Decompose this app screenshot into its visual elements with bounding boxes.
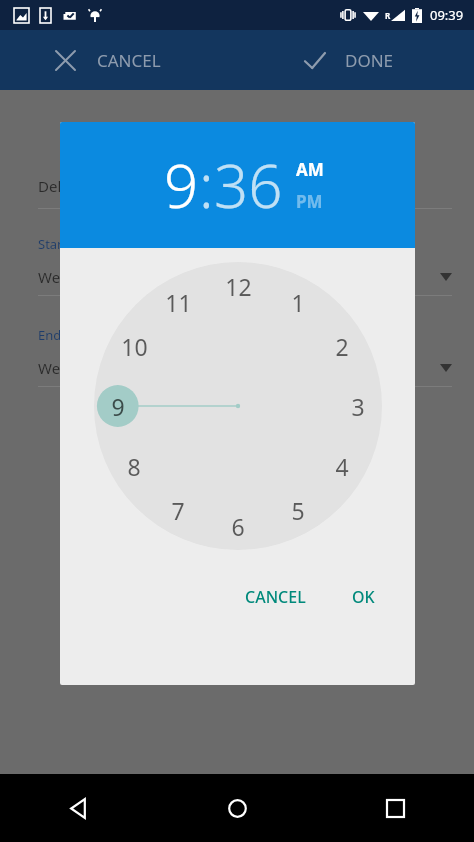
button[interactable]: AM	[296, 158, 324, 181]
button[interactable]: Back	[0, 774, 158, 842]
staticText: 6	[231, 511, 245, 542]
staticText: 09:39	[430, 6, 464, 24]
staticText: 4	[335, 451, 349, 482]
staticText: OK	[352, 586, 375, 608]
staticText: CANCEL	[97, 49, 161, 72]
staticText: DONE	[345, 49, 394, 72]
button[interactable]: PM	[296, 190, 323, 213]
button[interactable]: 36	[214, 144, 283, 226]
staticText: 11	[165, 287, 192, 318]
staticText: Wed, Jan 24, 2018	[38, 358, 163, 378]
button[interactable]: CANCEL	[56, 49, 161, 72]
button[interactable]: Recent apps	[316, 774, 474, 842]
staticText: :	[199, 144, 214, 226]
button[interactable]: CANCEL	[233, 577, 318, 617]
button[interactable]: OK	[340, 577, 387, 617]
staticText: R	[385, 10, 391, 21]
staticText: 9	[111, 391, 125, 422]
button[interactable]: Home	[158, 774, 316, 842]
staticText: 3	[351, 391, 365, 422]
staticText: 1	[291, 287, 305, 318]
staticText: 7	[171, 495, 185, 526]
staticText: End	[38, 326, 62, 344]
staticText: Start	[38, 235, 68, 253]
button[interactable]: DONE	[305, 49, 394, 72]
staticText: Wed, Jan 24, 2018	[38, 267, 163, 287]
staticText: 10	[121, 331, 148, 362]
button[interactable]: 9	[164, 144, 199, 226]
staticText: 12	[225, 271, 252, 302]
staticText: 8	[127, 451, 141, 482]
staticText: CANCEL	[245, 586, 306, 608]
staticText: Delete event	[38, 176, 127, 196]
button[interactable]: 12	[94, 262, 382, 550]
staticText: 2	[335, 331, 349, 362]
staticText: 5	[291, 495, 305, 526]
